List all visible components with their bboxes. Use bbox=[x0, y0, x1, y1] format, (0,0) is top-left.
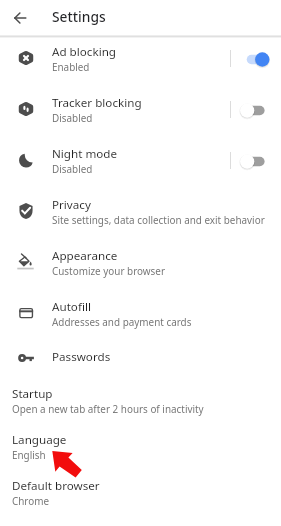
staticText: Site settings, data collection and exit … bbox=[52, 213, 265, 226]
button[interactable]: Ad blocking bbox=[0, 37, 281, 88]
staticText: Customize your browser bbox=[52, 264, 165, 277]
button[interactable]: Appearance bbox=[0, 241, 281, 292]
button[interactable]: Passwords bbox=[0, 342, 281, 393]
staticText: Enabled bbox=[52, 60, 90, 73]
staticText: English bbox=[12, 448, 46, 461]
staticText: Startup bbox=[12, 386, 53, 402]
staticText: Ad blocking bbox=[52, 44, 116, 60]
button[interactable]: Turn on bbox=[236, 95, 281, 125]
staticText: Tracker blocking bbox=[52, 95, 142, 111]
staticText: Appearance bbox=[52, 248, 118, 264]
button[interactable]: Night mode bbox=[0, 139, 281, 190]
staticText: Privacy bbox=[52, 197, 91, 213]
staticText: Passwords bbox=[52, 349, 111, 365]
staticText: Disabled bbox=[52, 111, 93, 124]
button[interactable]: Turn off bbox=[236, 44, 281, 74]
staticText: Night mode bbox=[52, 146, 118, 162]
button[interactable]: Autofill bbox=[0, 292, 281, 343]
button[interactable]: Privacy bbox=[0, 190, 281, 241]
button[interactable]: Default browser bbox=[0, 472, 281, 517]
staticText: Chrome bbox=[12, 494, 50, 507]
staticText: Language bbox=[12, 432, 67, 448]
staticText: Autofill bbox=[52, 299, 91, 315]
staticText: Open a new tab after 2 hours of inactivi… bbox=[12, 402, 204, 415]
staticText: Default browser bbox=[12, 478, 100, 494]
staticText: Settings bbox=[52, 7, 106, 26]
button[interactable]: Tracker blocking bbox=[0, 88, 281, 139]
button[interactable]: Turn on bbox=[236, 146, 281, 176]
staticText: Disabled bbox=[52, 162, 93, 175]
staticText: Addresses and payment cards bbox=[52, 315, 192, 328]
button[interactable]: Startup bbox=[0, 380, 281, 425]
button[interactable]: Language bbox=[0, 426, 281, 471]
button[interactable]: Back bbox=[8, 7, 32, 31]
